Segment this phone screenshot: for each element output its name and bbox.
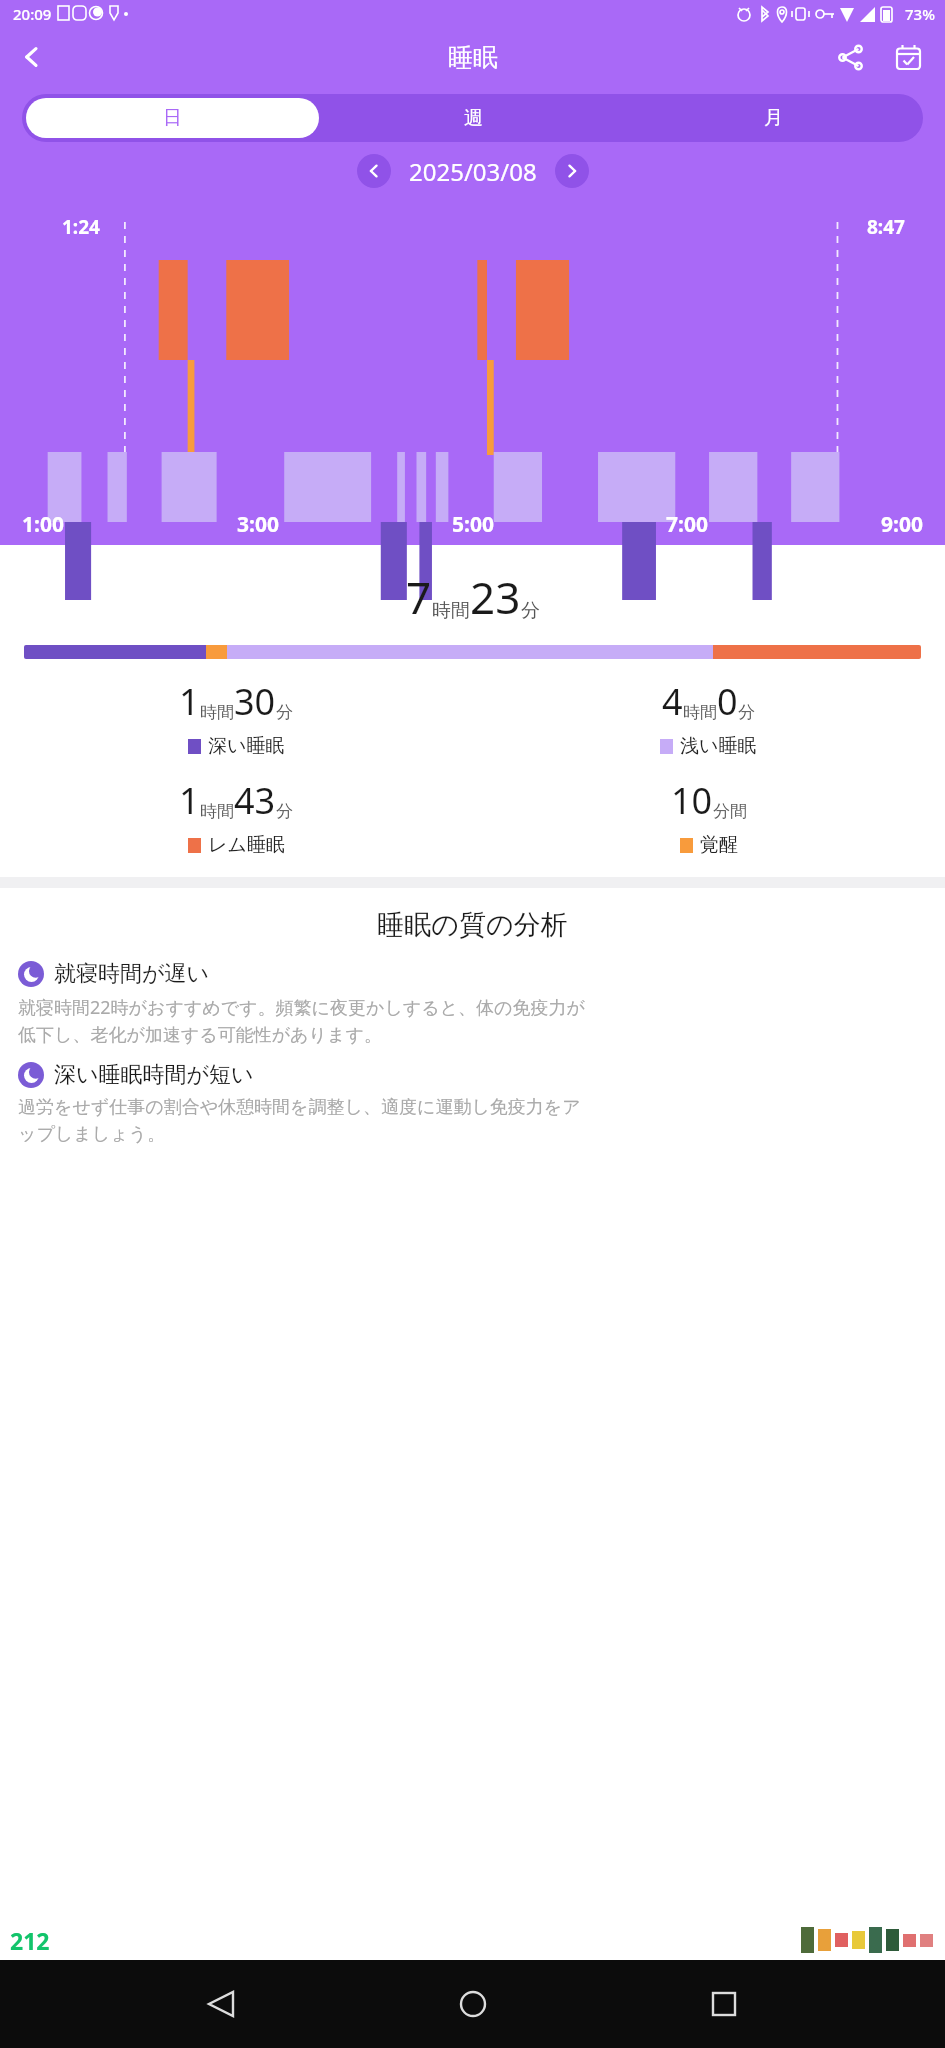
- button[interactable]: 深い睡眠時間が短い: [18, 1061, 927, 1146]
- staticText: 3:00: [237, 510, 279, 539]
- staticText: 分: [276, 702, 293, 723]
- staticText: 時間: [432, 599, 470, 623]
- staticText: 週: [464, 106, 483, 130]
- button[interactable]: Calendar: [883, 32, 933, 82]
- button[interactable]: 10: [472, 776, 945, 857]
- button[interactable]: Previous day: [357, 154, 391, 188]
- staticText: 23: [470, 567, 521, 627]
- staticText: 睡眠の質の分析: [0, 908, 945, 942]
- staticText: 分間: [713, 801, 747, 822]
- staticText: 8:47: [867, 214, 905, 240]
- button[interactable]: 1: [0, 677, 472, 758]
- button[interactable]: 4: [472, 677, 945, 758]
- button[interactable]: 週: [323, 94, 623, 142]
- staticText: 就寝時間22時がおすすめです。頻繁に夜更かしすると、体の免疫力が 低下し、老化が…: [18, 995, 585, 1047]
- button[interactable]: Share: [825, 32, 875, 82]
- staticText: 深い睡眠: [208, 734, 285, 758]
- staticText: 月: [764, 106, 783, 130]
- button[interactable]: Home: [443, 1974, 503, 2034]
- staticText: 20:09: [13, 4, 52, 24]
- staticText: 73%: [905, 4, 935, 24]
- staticText: 過労をせず仕事の割合や休憩時間を調整し、適度に運動し免疫力をア ップしましょう。: [18, 1096, 581, 1146]
- staticText: 43: [234, 776, 276, 825]
- staticText: 7:00: [666, 510, 708, 539]
- staticText: 1: [179, 677, 200, 726]
- button[interactable]: Back: [6, 31, 58, 83]
- staticText: 睡眠: [448, 42, 498, 73]
- staticText: 時間: [200, 801, 234, 822]
- staticText: 0: [717, 677, 738, 726]
- staticText: 浅い睡眠: [680, 734, 757, 758]
- staticText: 時間: [200, 702, 234, 723]
- staticText: 1:00: [22, 510, 64, 539]
- staticText: 10: [671, 776, 713, 825]
- staticText: 7: [406, 567, 432, 627]
- staticText: 時間: [683, 702, 717, 723]
- button[interactable]: Recent apps: [694, 1974, 754, 2034]
- staticText: 日: [163, 106, 182, 130]
- staticText: 覚醒: [700, 833, 738, 857]
- staticText: 分: [521, 599, 540, 623]
- staticText: 深い睡眠時間が短い: [54, 1061, 254, 1089]
- staticText: 分: [276, 801, 293, 822]
- staticText: 分: [738, 702, 755, 723]
- staticText: 就寝時間が遅い: [54, 960, 210, 988]
- button[interactable]: 1: [0, 776, 472, 857]
- staticText: 9:00: [881, 510, 923, 539]
- staticText: 1:24: [62, 214, 100, 240]
- staticText: 2025/03/08: [409, 155, 537, 188]
- staticText: 212: [10, 1925, 50, 1956]
- button[interactable]: Next day: [555, 154, 589, 188]
- button[interactable]: 月: [623, 94, 923, 142]
- button[interactable]: Back: [191, 1974, 251, 2034]
- staticText: 30: [234, 677, 276, 726]
- staticText: レム睡眠: [208, 833, 285, 857]
- staticText: 1: [179, 776, 200, 825]
- staticText: 4: [662, 677, 683, 726]
- button[interactable]: 就寝時間が遅い: [18, 960, 927, 1047]
- button[interactable]: 日: [26, 98, 319, 138]
- staticText: 5:00: [452, 510, 494, 539]
